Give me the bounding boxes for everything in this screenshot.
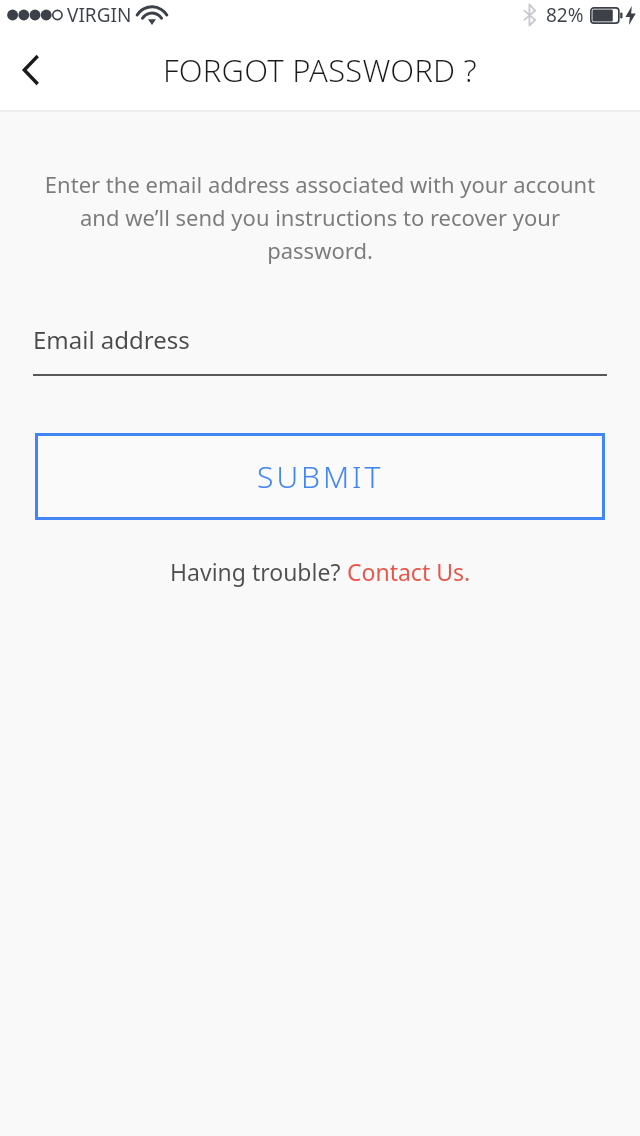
button[interactable]: Email address xyxy=(33,323,607,376)
staticText: Email address xyxy=(33,323,190,356)
button[interactable]: Back xyxy=(0,39,62,101)
staticText: FORGOT PASSWORD ? xyxy=(163,49,477,91)
staticText: SUBMIT xyxy=(257,456,384,497)
staticText: VIRGIN xyxy=(67,2,132,28)
staticText: 82% xyxy=(546,2,584,28)
button[interactable]: Contact Us. xyxy=(347,556,471,587)
staticText: Enter the email address associated with … xyxy=(40,169,600,265)
staticText: Having trouble? xyxy=(170,556,347,587)
button[interactable]: SUBMIT xyxy=(35,433,605,520)
staticText: Contact Us. xyxy=(347,556,471,587)
